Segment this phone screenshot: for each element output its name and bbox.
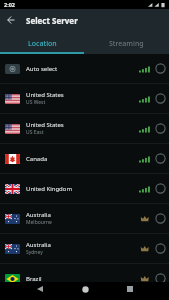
staticText: Australia [26, 241, 51, 249]
staticText: Streaming [109, 39, 144, 49]
button[interactable]: Canada [0, 144, 169, 173]
button[interactable]: United States [0, 84, 169, 113]
staticText: Sydney [26, 249, 43, 256]
staticText: United States [26, 121, 64, 129]
staticText: US West [26, 99, 46, 106]
staticText: Select Server [26, 15, 78, 26]
button[interactable] [155, 153, 166, 164]
staticText: Melbourne [26, 219, 52, 226]
button[interactable]: Brazil [0, 264, 169, 293]
staticText: US East [26, 129, 44, 136]
button[interactable] [155, 93, 166, 104]
button[interactable] [155, 273, 166, 284]
button[interactable] [31, 282, 49, 296]
button[interactable]: Australia [0, 234, 169, 263]
staticText: United States [26, 91, 64, 99]
staticText: Australia [26, 211, 51, 219]
button[interactable] [155, 213, 166, 224]
staticText: 2:02 [4, 1, 15, 8]
button[interactable]: Streaming [84, 31, 169, 52]
button[interactable]: United States [0, 114, 169, 143]
button[interactable] [76, 282, 94, 296]
button[interactable] [121, 282, 139, 296]
button[interactable]: United Kingdom [0, 174, 169, 203]
button[interactable] [155, 123, 166, 134]
staticText: Auto select [26, 65, 58, 73]
button[interactable]: Location [0, 31, 84, 52]
staticText: Canada [26, 155, 48, 163]
staticText: Location [28, 39, 57, 49]
staticText: United Kingdom [26, 185, 73, 193]
staticText: Brazil [26, 275, 42, 283]
button[interactable] [0, 9, 22, 31]
button[interactable]: Auto select [0, 54, 169, 83]
button[interactable]: Australia [0, 204, 169, 233]
button[interactable] [155, 183, 166, 194]
button[interactable] [155, 63, 166, 74]
button[interactable] [155, 243, 166, 254]
